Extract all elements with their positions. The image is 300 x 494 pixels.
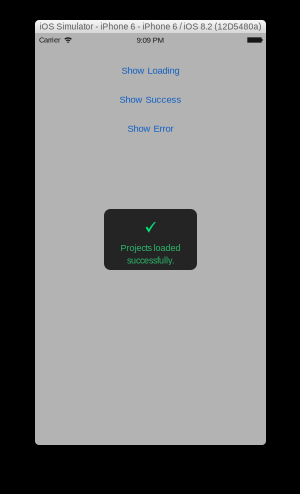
staticText: Show Loading (121, 65, 179, 76)
staticText: successfully. (127, 255, 174, 265)
staticText: 9:09 PM (136, 36, 164, 44)
staticText: Carrier (39, 36, 60, 44)
staticText: Projects loaded (120, 243, 180, 253)
button[interactable]: Show Success (35, 93, 266, 105)
staticText: iOS Simulator - iPhone 6 - iPhone 6 / iO… (39, 22, 261, 31)
staticText: Show Error (127, 123, 173, 134)
button[interactable]: Show Loading (35, 64, 266, 76)
button[interactable]: Show Error (35, 122, 266, 134)
staticText: Show Success (119, 94, 181, 105)
